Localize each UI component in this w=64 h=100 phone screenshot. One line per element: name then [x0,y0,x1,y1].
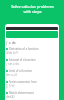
staticText: ∫ x dx [6,40,16,45]
staticText: Matrix determinant [9,91,34,94]
button[interactable]: Derivative of a function [6,47,58,58]
staticText: Limit of a function [9,69,32,72]
button[interactable]: Limit of a function [6,69,58,80]
button[interactable]: Solve [6,31,58,38]
staticText: det(A) [6,95,15,99]
staticText: ∫ sin x dx [6,62,19,66]
staticText: lim x→0 [6,73,17,77]
button[interactable]: Enter expression [6,27,58,30]
staticText: Solve calculus problems [11,4,54,9]
staticText: ∑ 1/n² [6,84,15,88]
button[interactable]: Matrix determinant [6,91,58,100]
staticText: Series expansion here [9,80,37,83]
staticText: Derivative of a function [9,47,39,50]
staticText: Integral of a function [9,58,36,61]
button[interactable]: Integral of a function [6,58,58,69]
staticText: d/dx (x²) [6,51,18,55]
button[interactable]: Series expansion here [6,80,58,91]
staticText: with steps [23,9,42,14]
